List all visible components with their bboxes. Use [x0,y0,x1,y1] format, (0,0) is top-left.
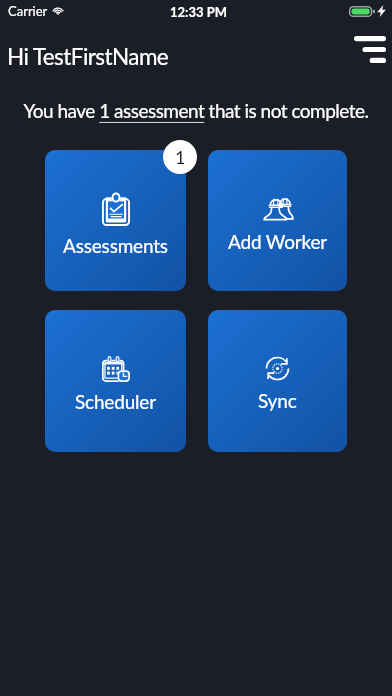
button[interactable]: Open menu [349,29,391,69]
staticText: Sync [258,389,297,412]
button[interactable]: Sync [208,310,347,452]
staticText: Add Worker [228,230,327,253]
staticText: 1 [175,146,186,168]
staticText: Carrier [8,3,48,19]
staticText: You have 1 assessment that is not comple… [0,99,392,122]
button[interactable]: Add Worker [208,150,347,291]
button[interactable]: Assessments [45,150,186,291]
staticText: Scheduler [75,390,156,413]
button[interactable]: Scheduler [45,310,186,452]
staticText: Assessments [63,234,168,257]
staticText: Hi TestFirstName [7,43,169,70]
staticText: 12:33 PM [170,4,227,20]
